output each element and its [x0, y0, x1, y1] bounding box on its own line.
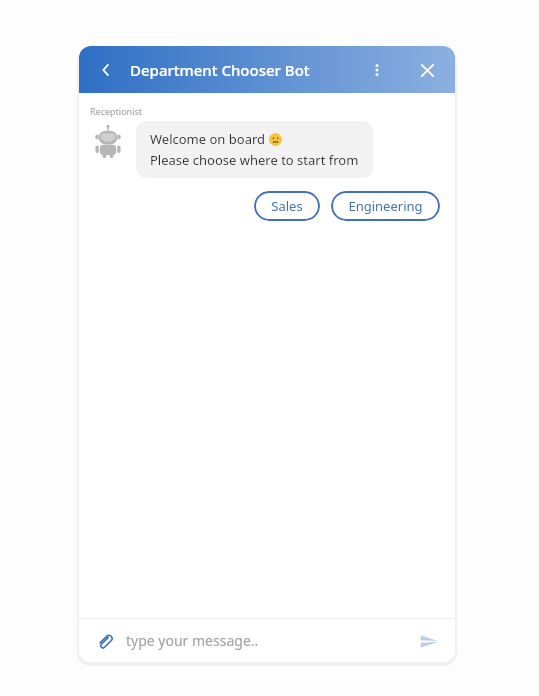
button[interactable]: Back — [93, 57, 119, 83]
button[interactable]: Send — [415, 627, 443, 655]
button[interactable]: Engineering — [331, 191, 440, 221]
button[interactable]: Attach file — [91, 628, 117, 654]
staticText: Welcome on board — [150, 130, 269, 148]
staticText: Receptionist — [90, 105, 143, 117]
staticText: Department Chooser Bot — [130, 60, 310, 80]
button[interactable]: More options — [363, 56, 391, 84]
button[interactable]: Close — [413, 56, 441, 84]
staticText: Sales — [271, 197, 303, 215]
staticText: Please choose where to start from — [150, 151, 359, 169]
staticText: type your message.. — [126, 631, 259, 650]
button[interactable]: Sales — [254, 191, 320, 221]
staticText: Engineering — [348, 197, 423, 215]
